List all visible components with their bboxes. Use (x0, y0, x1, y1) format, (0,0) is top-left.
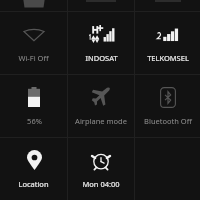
staticText: INDOSAT (85, 53, 118, 63)
staticText: Location (18, 179, 49, 189)
button[interactable]: Airplane mode (68, 75, 134, 137)
button[interactable]: Location (0, 138, 67, 200)
staticText: Mon 04:00 (82, 179, 120, 189)
button[interactable] (135, 0, 200, 11)
button[interactable]: INDOSAT (68, 12, 134, 74)
button[interactable]: Brightness (0, 0, 67, 11)
button[interactable] (68, 0, 134, 11)
staticText: Wi-Fi Off (18, 53, 49, 63)
button[interactable]: TELKOMSEL (135, 12, 200, 74)
button[interactable]: Battery 56 percent (0, 75, 67, 137)
staticText: 56% (27, 116, 42, 126)
staticText: Bluetooth Off (144, 116, 192, 126)
button[interactable]: Alarm Mon 04:00 (68, 138, 134, 200)
button[interactable]: Bluetooth Off (135, 75, 200, 137)
staticText: Airplane mode (75, 116, 127, 126)
button[interactable]: Wi-Fi Off (0, 12, 67, 74)
staticText: TELKOMSEL (147, 53, 189, 63)
